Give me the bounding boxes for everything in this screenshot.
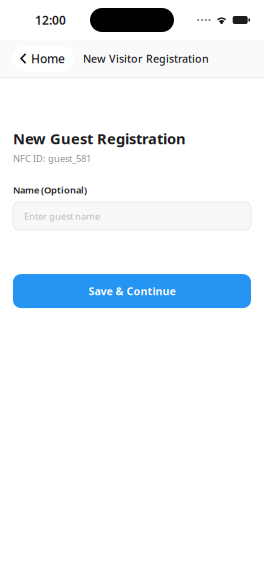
staticText: 12:00 [35,12,66,28]
staticText: NFC ID: guest_581 [13,152,91,165]
staticText: Enter guest name [24,210,100,222]
button[interactable]: Home [12,45,74,71]
button[interactable]: Save & Continue [13,274,251,308]
staticText: New Visitor Registration [83,51,209,66]
staticText: Name (Optional) [13,184,87,196]
staticText: Save & Continue [88,284,175,298]
staticText: Home [31,50,65,66]
button[interactable]: Enter guest name [13,202,251,230]
staticText: New Guest Registration [13,129,186,148]
